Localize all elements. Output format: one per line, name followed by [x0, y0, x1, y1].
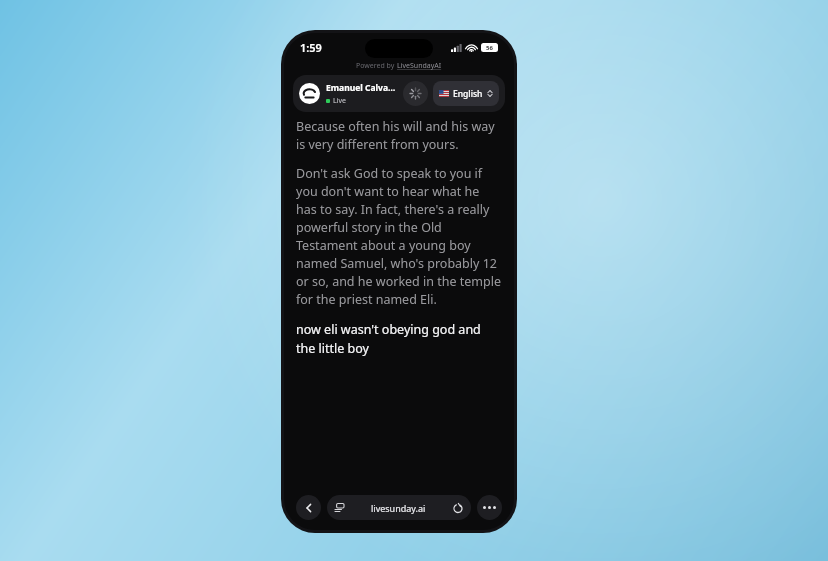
- staticText: Live: [333, 96, 346, 106]
- button[interactable]: livesunday.ai: [327, 495, 471, 520]
- button[interactable]: LiveSundayAI: [397, 61, 442, 71]
- button[interactable]: More options: [477, 495, 502, 520]
- button[interactable]: Loading: [403, 81, 428, 106]
- staticText: Powered by: [356, 61, 397, 71]
- staticText: 56: [486, 44, 493, 52]
- staticText: Because often his will and his way is ve…: [296, 118, 502, 153]
- other: Reload: [453, 503, 463, 513]
- button[interactable]: Back: [296, 495, 321, 520]
- staticText: Don't ask God to speak to you if you don…: [296, 165, 502, 308]
- staticText: now eli wasn't obeying god and the littl…: [296, 321, 502, 357]
- button[interactable]: English: [433, 81, 499, 106]
- staticText: Emanuel Calva…: [326, 82, 396, 94]
- staticText: 1:59: [300, 40, 322, 55]
- staticText: English: [453, 88, 483, 100]
- staticText: livesunday.ai: [371, 502, 426, 514]
